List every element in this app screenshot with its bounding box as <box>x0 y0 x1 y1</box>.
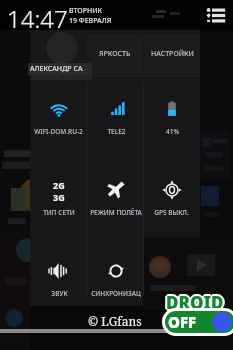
staticText: 2G <box>53 179 65 191</box>
button[interactable]: ЗВУК <box>30 242 87 320</box>
staticText: DROID <box>165 291 223 314</box>
staticText: OFF <box>168 312 197 332</box>
staticText: АЛЕКСАНДР СА <box>30 64 83 74</box>
staticText: © LGfans <box>88 313 142 329</box>
staticText: РЕЖИМ ПОЛЁТА <box>90 208 142 217</box>
button[interactable]: TELE2 <box>87 80 144 158</box>
button[interactable]: 41% <box>143 80 200 158</box>
staticText: ЯРКОСТЬ <box>99 49 131 59</box>
button[interactable]: 2G <box>30 161 87 239</box>
button[interactable]: АЛЕКСАНДР СА <box>28 63 92 75</box>
staticText: WIFI-DOM.RU-2 <box>34 127 83 136</box>
staticText: DROID <box>166 290 224 313</box>
staticText: СИНХРОНИЗАЦ <box>91 289 141 298</box>
staticText: 41% <box>166 127 179 136</box>
staticText: DROID <box>167 291 225 314</box>
staticText: DROID <box>165 292 223 315</box>
staticText: DROID <box>167 290 225 313</box>
button[interactable]: Quick settings list <box>205 6 227 24</box>
button[interactable]: СИНХРОНИЗАЦ <box>87 242 144 320</box>
staticText: DROID <box>166 292 224 315</box>
staticText: DROID <box>167 292 225 315</box>
button[interactable]: ЯРКОСТЬ <box>87 34 143 74</box>
staticText: DROID <box>168 291 226 314</box>
staticText: ЗВУК <box>51 289 68 298</box>
staticText: DROID <box>166 291 224 314</box>
staticText: ТИП СЕТИ <box>43 208 75 217</box>
button[interactable]: GPS ВЫКЛ. <box>143 161 200 239</box>
staticText: DROID <box>166 289 224 312</box>
button[interactable]: РЕЖИМ ПОЛЁТА <box>87 161 144 239</box>
staticText: DROID <box>166 293 224 316</box>
staticText: 3G <box>53 191 65 201</box>
staticText: НАСТРОЙКИ <box>151 49 194 59</box>
staticText: TELE2 <box>107 127 126 136</box>
button[interactable]: WIFI-DOM.RU-2 <box>30 80 87 158</box>
staticText: ВТОРНИК <box>69 6 103 16</box>
button[interactable]: НАСТРОЙКИ <box>144 34 200 74</box>
staticText: DROID <box>165 290 223 313</box>
staticText: 14:47 <box>7 2 68 32</box>
staticText: GPS ВЫКЛ. <box>154 208 189 217</box>
staticText: DROID <box>164 291 222 314</box>
button[interactable]: Close shade <box>0 329 233 333</box>
staticText: 19 ФЕВРАЛЯ <box>69 16 112 26</box>
staticText: DROID <box>166 291 224 314</box>
